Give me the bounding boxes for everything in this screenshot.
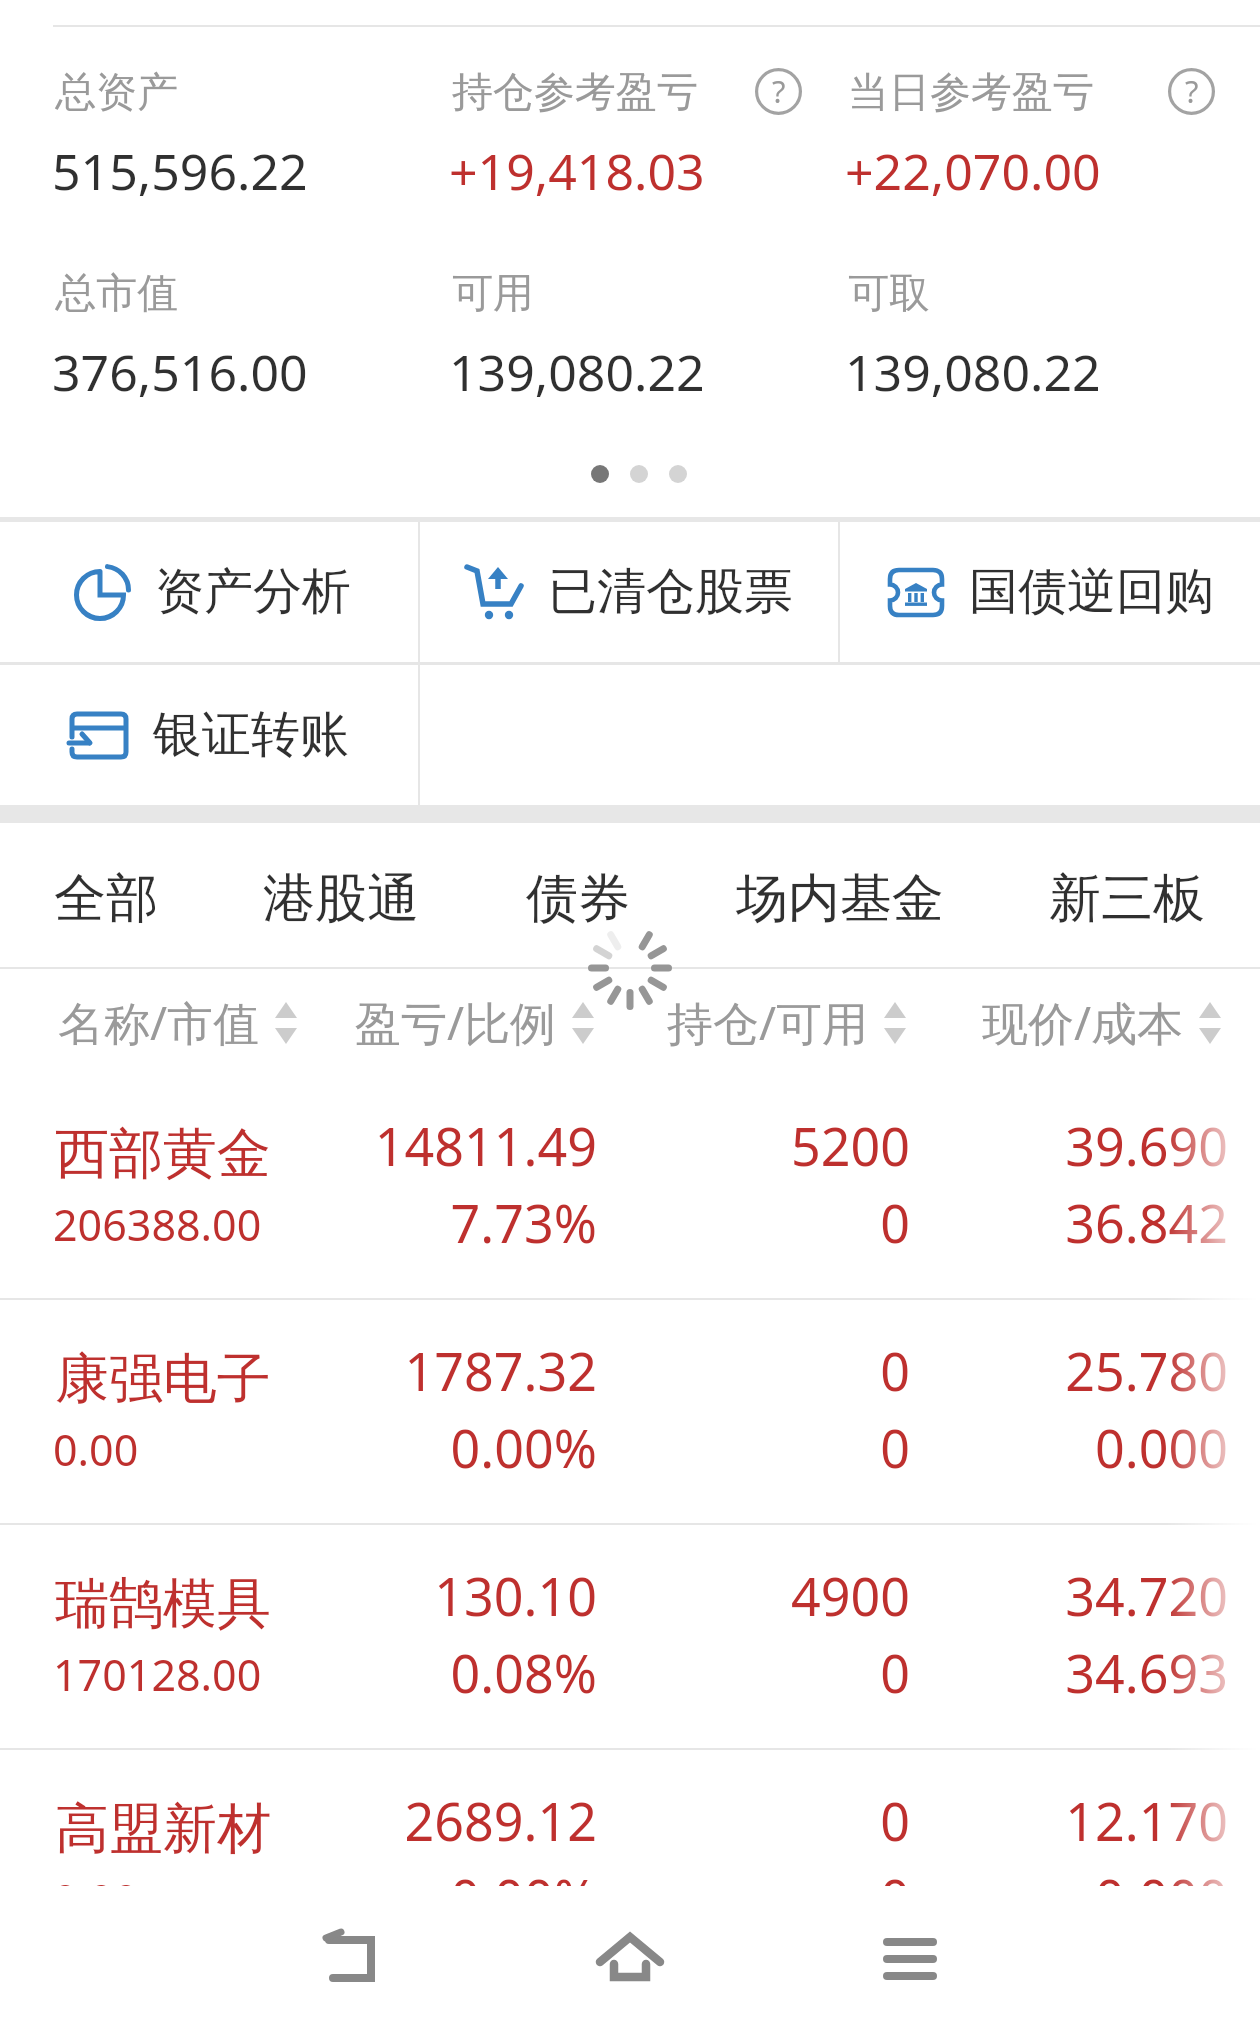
staticText: 139,080.22 <box>845 338 1101 406</box>
staticText: 34.720 <box>828 1560 1228 1631</box>
staticText: 0.00 <box>53 1420 139 1479</box>
staticText: 港股通 <box>263 866 419 932</box>
staticText: 可用 <box>452 268 534 320</box>
staticText: 0 <box>510 1785 910 1856</box>
staticText: 可取 <box>848 268 930 320</box>
staticText: ? <box>1185 70 1199 112</box>
staticText: 12.170 <box>828 1785 1228 1856</box>
staticText: 0.000 <box>828 1862 1228 1886</box>
staticText: 名称/市值 <box>58 991 260 1054</box>
staticText: 170128.00 <box>53 1645 262 1704</box>
staticText: 14811.49 <box>197 1110 597 1181</box>
staticText: 34.693 <box>828 1637 1228 1708</box>
staticText: 0 <box>510 1637 910 1708</box>
staticText: 总市值 <box>55 268 178 320</box>
staticText: 当日参考盈亏 <box>848 67 1094 119</box>
button[interactable]: 高盟新材 <box>0 1748 1260 1886</box>
button[interactable]: 康强电子 <box>0 1298 1260 1523</box>
staticText: 5200 <box>510 1110 910 1181</box>
staticText: 债券 <box>526 866 630 932</box>
staticText: 515,596.22 <box>52 137 308 205</box>
button[interactable]: 持仓/可用 <box>667 991 907 1054</box>
staticText: 0 <box>510 1187 910 1258</box>
staticText: 现价/成本 <box>982 991 1184 1054</box>
staticText: 康强电子 <box>55 1345 271 1413</box>
button[interactable]: 帮助 <box>755 68 802 115</box>
staticText: 0.08% <box>197 1637 597 1708</box>
staticText: 1787.32 <box>197 1335 597 1406</box>
staticText: 国债逆回购 <box>969 561 1214 623</box>
button[interactable]: 西部黄金 <box>0 1073 1260 1298</box>
button[interactable]: 帮助 <box>1168 68 1215 115</box>
button[interactable]: 全部 <box>54 866 158 932</box>
button[interactable]: 场内基金 <box>736 866 944 932</box>
staticText: 0 <box>510 1412 910 1483</box>
staticText: 39.690 <box>828 1110 1228 1181</box>
staticText: 场内基金 <box>736 866 944 932</box>
button[interactable]: 瑞鹄模具 <box>0 1523 1260 1748</box>
staticText: 资产分析 <box>155 561 351 623</box>
staticText: 376,516.00 <box>52 338 308 406</box>
staticText: 银证转账 <box>153 704 349 766</box>
staticText: 25.780 <box>828 1335 1228 1406</box>
button[interactable]: 最近任务 <box>840 1886 980 2032</box>
staticText: 139,080.22 <box>449 338 705 406</box>
button[interactable]: 港股通 <box>263 866 419 932</box>
button[interactable]: 国债逆回购 <box>840 522 1260 662</box>
button[interactable]: 新三板 <box>1049 866 1205 932</box>
staticText: 总资产 <box>55 67 178 119</box>
staticText: 0 <box>510 1862 910 1886</box>
staticText: 瑞鹄模具 <box>55 1570 271 1638</box>
staticText: 西部黄金 <box>55 1120 271 1188</box>
staticText: +22,070.00 <box>845 137 1101 205</box>
staticText: 全部 <box>54 866 158 932</box>
staticText: 高盟新材 <box>55 1795 271 1863</box>
staticText: 0.00% <box>197 1862 597 1886</box>
staticText: 盈亏/比例 <box>355 991 557 1054</box>
button[interactable]: 银证转账 <box>0 665 418 805</box>
button[interactable]: 盈亏/比例 <box>355 991 595 1054</box>
staticText: 0.000 <box>828 1412 1228 1483</box>
staticText: ? <box>772 70 786 112</box>
staticText: +19,418.03 <box>449 137 705 205</box>
button[interactable]: 返回 <box>280 1886 420 2032</box>
staticText: 7.73% <box>197 1187 597 1258</box>
button[interactable]: 资产分析 <box>0 522 418 662</box>
staticText: 0 <box>510 1335 910 1406</box>
staticText: 持仓/可用 <box>667 991 869 1054</box>
staticText: 130.10 <box>197 1560 597 1631</box>
button[interactable]: 已清仓股票 <box>420 522 838 662</box>
staticText: 0.00% <box>197 1412 597 1483</box>
button[interactable]: 名称/市值 <box>58 991 298 1054</box>
button[interactable]: 现价/成本 <box>982 991 1222 1054</box>
button[interactable]: 债券 <box>526 866 630 932</box>
staticText: 持仓参考盈亏 <box>452 67 698 119</box>
staticText: 新三板 <box>1049 866 1205 932</box>
staticText: 2689.12 <box>197 1785 597 1856</box>
staticText: 已清仓股票 <box>548 561 793 623</box>
button[interactable]: 主页 <box>560 1886 700 2032</box>
staticText: 36.842 <box>828 1187 1228 1258</box>
staticText: 0.00 <box>53 1870 139 1886</box>
staticText: 4900 <box>510 1560 910 1631</box>
staticText: 206388.00 <box>53 1195 262 1254</box>
